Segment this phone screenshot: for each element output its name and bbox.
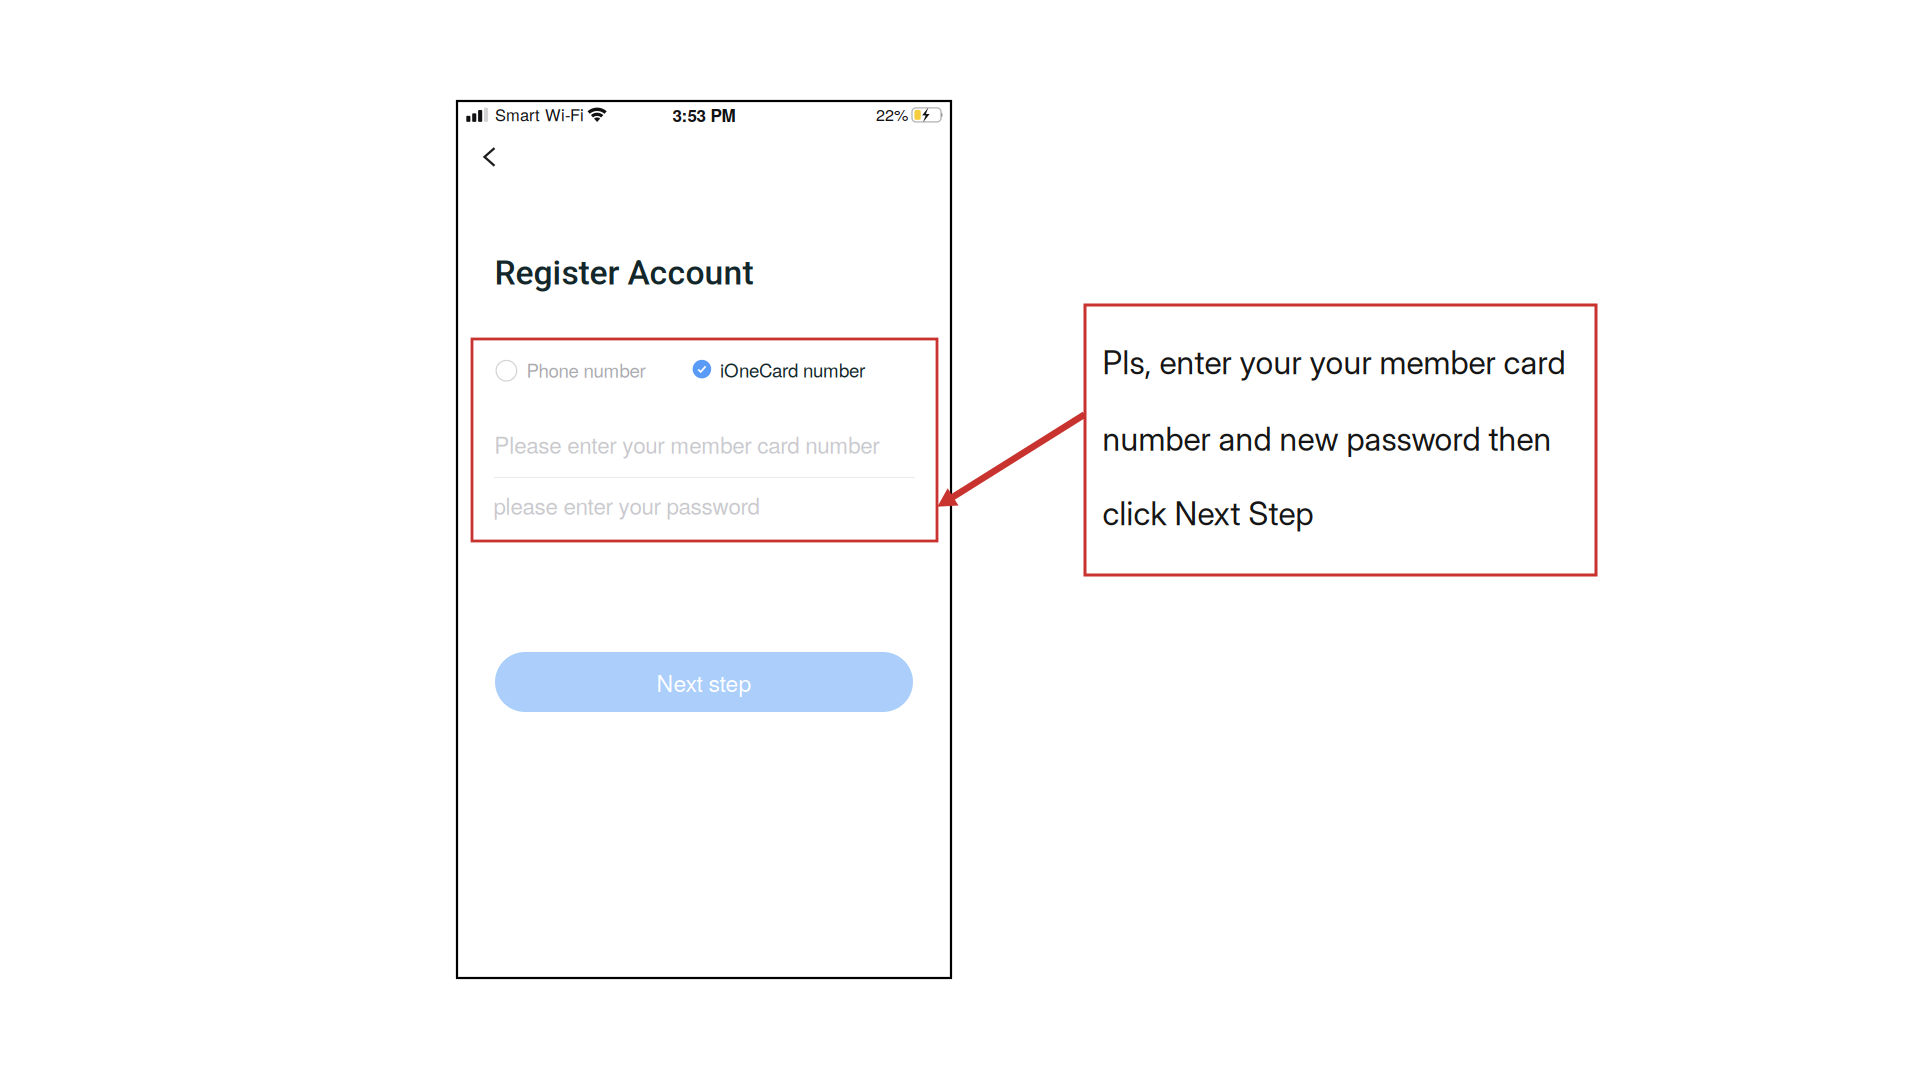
staticText: Phone number: [527, 356, 646, 383]
staticText: iOneCard number: [720, 356, 865, 383]
staticText: Please enter your member card number: [494, 428, 879, 460]
button[interactable]: iOneCard number: [692, 351, 876, 391]
button[interactable]: Please enter your member card number: [494, 423, 915, 478]
staticText: click Next Step: [1102, 494, 1313, 533]
button[interactable]: Next step: [495, 652, 913, 712]
button[interactable]: Back: [471, 136, 509, 178]
staticText: Pls, enter your your member card: [1102, 343, 1565, 382]
staticText: 22%: [876, 102, 908, 125]
staticText: please enter your password: [494, 489, 760, 521]
staticText: Next step: [656, 666, 751, 698]
staticText: 3:53 PM: [673, 103, 736, 127]
staticText: Register Account: [495, 253, 754, 293]
staticText: number and new password then: [1102, 420, 1551, 458]
staticText: Smart Wi-Fi: [495, 102, 584, 126]
button[interactable]: please enter your password: [494, 478, 915, 532]
button[interactable]: Phone number: [496, 351, 658, 391]
